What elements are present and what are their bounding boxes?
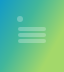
button[interactable]: Field <box>18 33 46 37</box>
other: Logo <box>17 16 23 22</box>
button[interactable]: Field <box>18 39 46 43</box>
button[interactable]: Field <box>18 27 46 31</box>
